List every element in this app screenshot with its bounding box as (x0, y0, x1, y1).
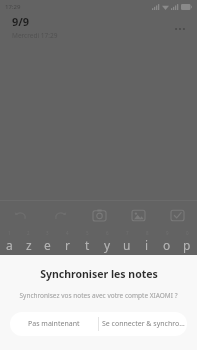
staticText: a (6, 237, 13, 253)
button[interactable]: 7 (117, 229, 137, 255)
button[interactable]: 3 (38, 229, 57, 255)
staticText: z (26, 237, 32, 253)
staticText: Synchronisez vos notes avec votre compte… (10, 291, 187, 300)
button[interactable]: 9 (157, 229, 177, 255)
staticText: y (104, 237, 111, 253)
staticText: o (163, 237, 171, 253)
button[interactable]: Insert image (119, 201, 158, 229)
button[interactable]: 5 (77, 229, 97, 255)
button[interactable]: Checklist (158, 201, 197, 229)
staticText: Pas maintenant (28, 319, 80, 329)
button[interactable]: 4 (57, 229, 77, 255)
staticText: t (85, 237, 90, 253)
button[interactable]: 8 (137, 229, 157, 255)
button[interactable]: 1 (0, 229, 19, 255)
staticText: 9/9 (12, 14, 30, 29)
button[interactable]: Camera (80, 201, 119, 229)
button[interactable]: 0 (177, 229, 197, 255)
staticText: 17:29 (5, 3, 21, 11)
staticText: r (65, 237, 70, 253)
staticText: u (123, 237, 131, 253)
button[interactable]: 6 (97, 229, 117, 255)
button[interactable]: Pas maintenant (10, 312, 98, 336)
button[interactable]: 2 (19, 229, 38, 255)
staticText: Se connecter & synchro… (102, 319, 185, 329)
staticText: e (44, 237, 51, 253)
staticText: 4 (66, 230, 69, 236)
button[interactable]: More options (169, 18, 191, 40)
staticText: Mercredi 17:29 (12, 31, 58, 40)
staticText: p (183, 237, 191, 253)
staticText: Synchroniser les notes (40, 267, 158, 281)
button[interactable]: Se connecter & synchro… (99, 312, 187, 336)
staticText: i (145, 237, 149, 253)
